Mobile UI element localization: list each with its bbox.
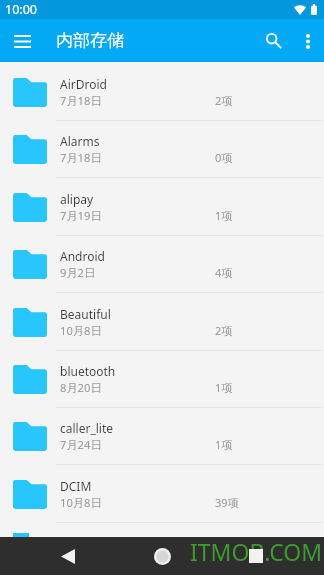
- button[interactable]: Search: [256, 23, 292, 59]
- button[interactable]: DCIM: [0, 465, 324, 523]
- button[interactable]: Android: [0, 235, 324, 293]
- staticText: 9月2日: [60, 265, 96, 280]
- button[interactable]: Recent apps: [234, 537, 278, 575]
- staticText: AirDroid: [60, 76, 107, 92]
- staticText: 7月19日: [60, 208, 102, 223]
- staticText: Beautiful: [60, 306, 111, 322]
- staticText: 10:00: [5, 1, 37, 18]
- staticText: 2项: [215, 323, 233, 338]
- button[interactable]: Alarms: [0, 120, 324, 178]
- button[interactable]: caller_lite: [0, 407, 324, 465]
- staticText: 10月8日: [60, 323, 102, 338]
- button[interactable]: Open navigation drawer: [8, 27, 36, 55]
- staticText: 1项: [215, 437, 233, 452]
- staticText: 内部存储: [56, 30, 124, 51]
- staticText: Alarms: [60, 133, 100, 149]
- button[interactable]: Beautiful: [0, 293, 324, 351]
- button[interactable]: Download: [0, 522, 324, 537]
- button[interactable]: Home: [140, 537, 184, 575]
- staticText: 2项: [215, 93, 233, 108]
- staticText: alipay: [60, 191, 94, 207]
- staticText: bluetooth: [60, 363, 116, 379]
- staticText: 7月18日: [60, 93, 102, 108]
- button[interactable]: Back: [46, 537, 90, 575]
- staticText: 1项: [215, 208, 233, 223]
- staticText: 10月8日: [60, 495, 102, 510]
- button[interactable]: alipay: [0, 178, 324, 236]
- staticText: caller_lite: [60, 420, 114, 436]
- staticText: 0项: [215, 150, 233, 165]
- staticText: 39项: [215, 495, 239, 510]
- staticText: 7月18日: [60, 150, 102, 165]
- staticText: Android: [60, 248, 105, 264]
- button[interactable]: More options: [293, 26, 323, 56]
- staticText: 7月24日: [60, 437, 102, 452]
- button[interactable]: bluetooth: [0, 350, 324, 408]
- staticText: ITMOB.COM: [190, 536, 323, 567]
- staticText: 8月20日: [60, 380, 102, 395]
- button[interactable]: AirDroid: [0, 63, 324, 121]
- staticText: 4项: [215, 265, 233, 280]
- staticText: DCIM: [60, 478, 92, 494]
- staticText: 1项: [215, 380, 233, 395]
